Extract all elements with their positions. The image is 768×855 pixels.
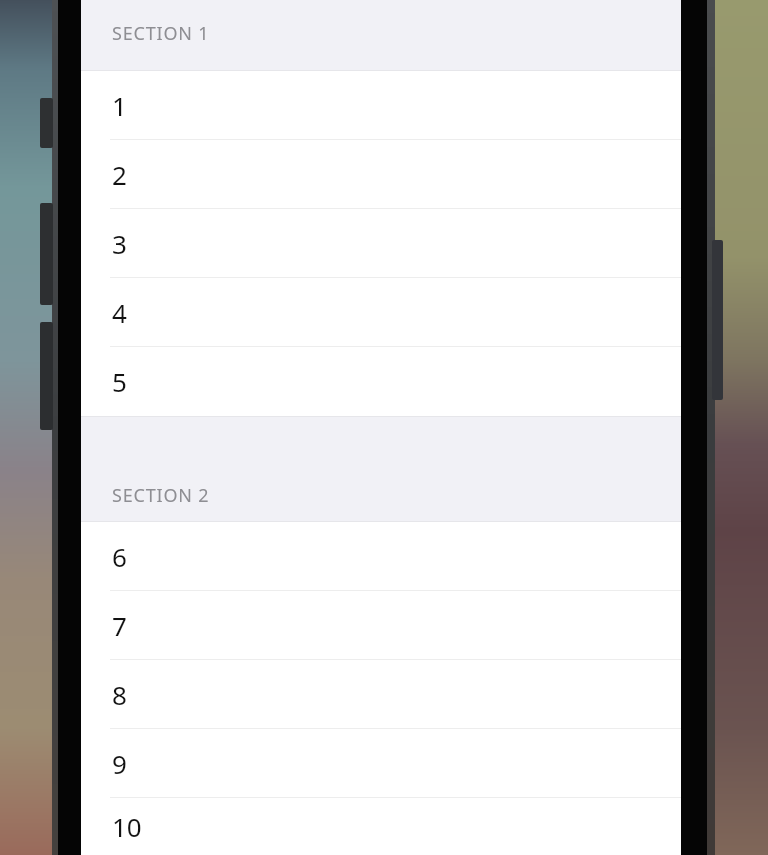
- staticText: SECTION 2: [112, 483, 210, 508]
- button[interactable]: 3: [81, 209, 681, 278]
- button[interactable]: 8: [81, 660, 681, 729]
- staticText: SECTION 1: [112, 21, 210, 46]
- button[interactable]: 6: [81, 522, 681, 591]
- button[interactable]: 2: [81, 140, 681, 209]
- button[interactable]: [40, 98, 53, 148]
- staticText: 4: [112, 295, 127, 330]
- staticText: 1: [112, 88, 127, 123]
- staticText: 3: [112, 226, 127, 261]
- staticText: 5: [112, 364, 127, 399]
- button[interactable]: 9: [81, 729, 681, 798]
- button[interactable]: 1: [81, 71, 681, 140]
- staticText: 8: [112, 677, 127, 712]
- staticText: 7: [112, 608, 127, 643]
- staticText: 2: [112, 157, 127, 192]
- button[interactable]: 5: [81, 347, 681, 416]
- button[interactable]: 10: [81, 798, 681, 855]
- button[interactable]: 7: [81, 591, 681, 660]
- staticText: 10: [112, 809, 142, 844]
- staticText: 6: [112, 539, 127, 574]
- button[interactable]: 4: [81, 278, 681, 347]
- staticText: 9: [112, 746, 127, 781]
